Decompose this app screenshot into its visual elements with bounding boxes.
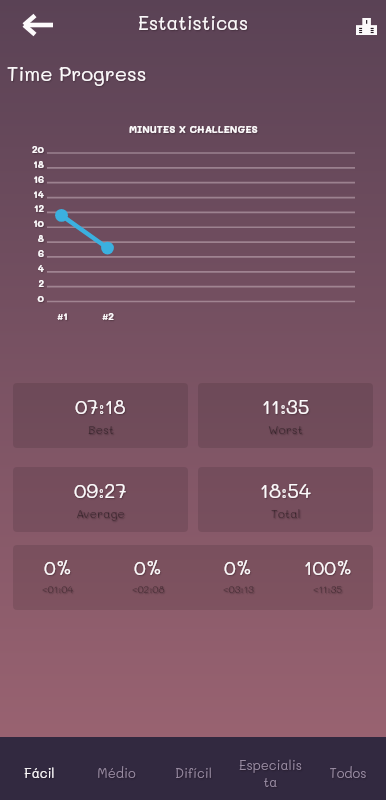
button[interactable]: Back (16, 3, 60, 47)
staticText: 0% (44, 555, 72, 580)
staticText: 0% (134, 555, 162, 580)
staticText: 4 (37, 261, 44, 274)
staticText: Total (271, 505, 301, 521)
button[interactable]: Fácil (0, 737, 78, 800)
staticText: Worst (268, 421, 303, 437)
staticText: <01:04 (42, 582, 74, 595)
staticText: 20 (31, 142, 44, 155)
staticText: MINUTES X CHALLENGES (129, 122, 258, 135)
staticText: 11:35 (262, 393, 310, 419)
staticText: 0 (37, 291, 44, 304)
button[interactable]: Difícil (155, 737, 232, 800)
staticText: 09:27 (74, 477, 127, 503)
button[interactable]: 0% (13, 545, 373, 610)
staticText: Médio (97, 764, 136, 781)
staticText: Time Progress (7, 60, 147, 86)
staticText: 07:18 (75, 393, 126, 419)
staticText: Fácil (24, 764, 55, 781)
staticText: <03:13 (223, 582, 254, 595)
staticText: <11:35 (313, 582, 343, 595)
staticText: 16 (33, 172, 44, 185)
staticText: 18 (33, 157, 44, 170)
staticText: <02:08 (132, 582, 165, 595)
staticText: 8 (37, 231, 44, 244)
staticText: Especialista (237, 756, 304, 790)
staticText: 100% (304, 555, 353, 580)
staticText: 0% (224, 555, 252, 580)
staticText: Best (88, 421, 114, 437)
staticText: 10 (33, 216, 44, 229)
button[interactable]: 09:27 (13, 467, 188, 532)
button[interactable]: 07:18 (13, 383, 188, 448)
staticText: Todos (329, 764, 367, 781)
button[interactable]: Leaderboard (348, 8, 384, 44)
button[interactable]: Especialista (232, 737, 309, 800)
staticText: #1 (57, 309, 68, 322)
staticText: Average (76, 505, 125, 521)
staticText: 2 (38, 276, 44, 289)
staticText: #2 (102, 309, 114, 322)
staticText: 18:54 (260, 477, 311, 503)
staticText: 12 (33, 201, 44, 214)
staticText: Difícil (175, 764, 212, 781)
staticText: 14 (33, 187, 44, 200)
button[interactable]: Todos (309, 737, 386, 800)
button[interactable]: 11:35 (198, 383, 373, 448)
button[interactable]: 18:54 (198, 467, 373, 532)
staticText: Estatisticas (138, 10, 249, 35)
staticText: 6 (37, 246, 44, 259)
button[interactable]: Médio (78, 737, 155, 800)
